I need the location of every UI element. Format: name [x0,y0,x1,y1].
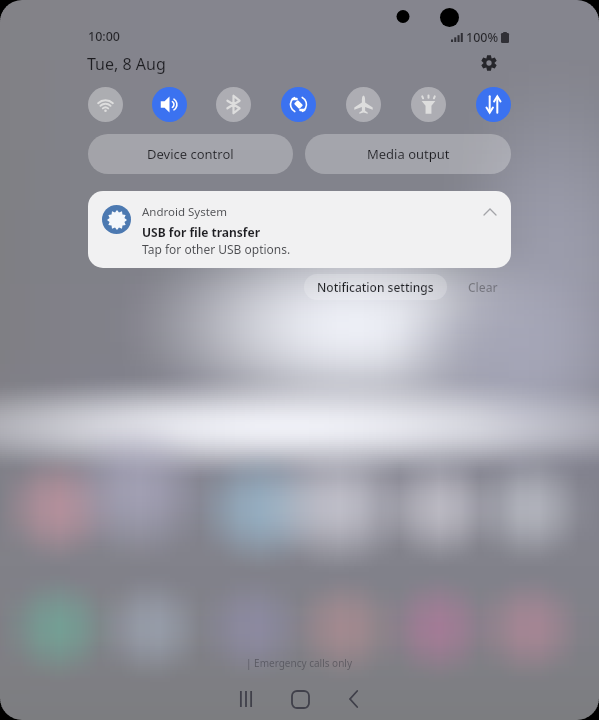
button[interactable]: Toggle [411,87,446,122]
staticText: | Emergency calls only [246,656,353,670]
button[interactable]: Media output [305,134,511,174]
button[interactable]: Toggle [152,87,187,122]
button[interactable]: Toggle [216,87,251,122]
button[interactable]: Toggle [476,87,511,122]
staticText: Tue, 8 Aug [87,53,166,75]
staticText: Media output [367,145,450,163]
button[interactable]: Toggle [346,87,381,122]
staticText: 10:00 [88,28,121,45]
button[interactable]: Settings [474,48,504,78]
button[interactable]: Recents [223,678,269,720]
button[interactable]: Back [331,678,377,720]
button[interactable]: Collapse notification [478,200,502,224]
staticText: Notification settings [317,279,434,295]
staticText: Device control [147,145,234,163]
staticText: Clear [468,279,498,295]
staticText: USB for file transfer [142,224,261,240]
staticText: 100% [466,29,499,46]
staticText: Tap for other USB options. [142,241,291,257]
button[interactable]: Device control [88,134,293,174]
button[interactable]: Android System [88,191,511,268]
button[interactable]: Toggle [281,87,316,122]
button[interactable]: Clear [455,274,511,300]
staticText: Android System [142,204,228,220]
button[interactable]: Notification settings [304,274,447,300]
button[interactable]: Toggle [88,87,123,122]
button[interactable]: Home [277,678,323,720]
